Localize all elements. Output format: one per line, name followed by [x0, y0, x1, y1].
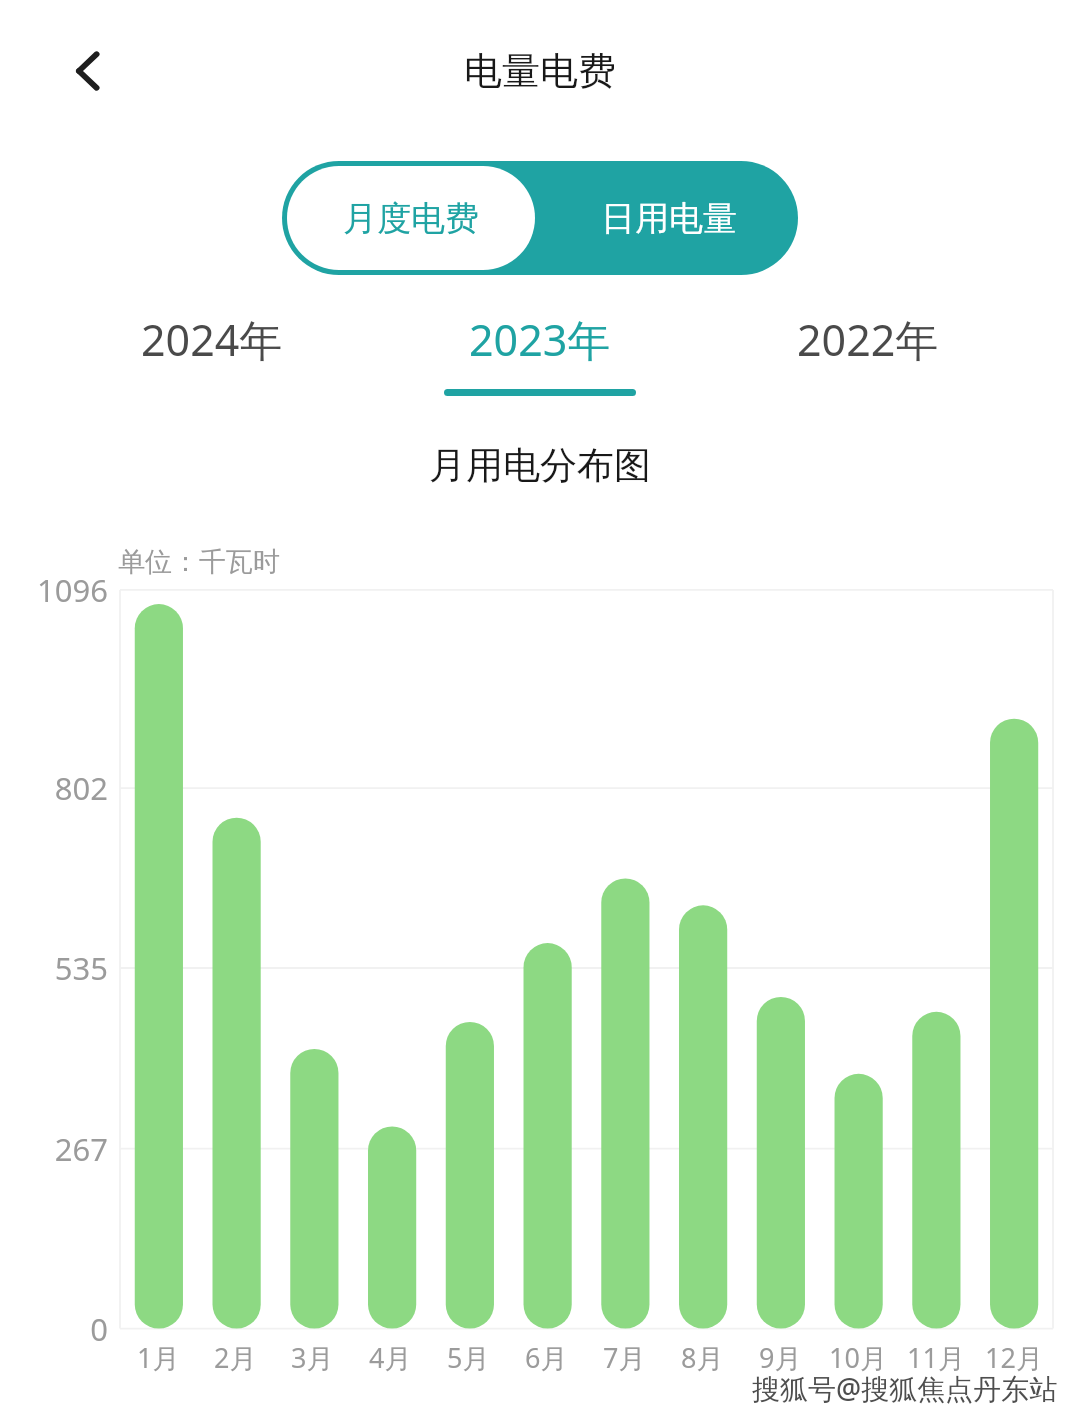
staticText: 电量电费 [464, 47, 616, 95]
staticText: 7月 [603, 1339, 646, 1376]
staticText: 802 [0, 767, 108, 809]
staticText: 12月 [985, 1339, 1043, 1376]
staticText: 4月 [369, 1339, 412, 1376]
staticText: 2月 [214, 1339, 257, 1376]
staticText: 267 [0, 1128, 108, 1170]
staticText: 2024年 [141, 310, 283, 369]
button[interactable]: 2024年 [48, 294, 376, 424]
staticText: 5月 [447, 1339, 490, 1376]
staticText: 0 [0, 1308, 108, 1350]
button[interactable]: Back [44, 27, 132, 115]
staticText: 2023年 [469, 310, 611, 369]
staticText: 3月 [291, 1339, 334, 1376]
staticText: 11月 [907, 1339, 965, 1376]
button[interactable]: 2023年 [376, 294, 704, 424]
staticText: 2022年 [797, 310, 939, 369]
button[interactable]: 日用电量 [540, 161, 798, 275]
staticText: 月度电费 [343, 197, 479, 240]
staticText: 月用电分布图 [0, 442, 1080, 489]
staticText: 1096 [0, 569, 108, 611]
staticText: 1月 [137, 1339, 180, 1376]
button[interactable]: 2022年 [704, 294, 1032, 424]
staticText: 单位：千瓦时 [118, 545, 280, 579]
staticText: 8月 [681, 1339, 724, 1376]
staticText: 535 [0, 947, 108, 989]
button[interactable]: 月度电费 [287, 166, 535, 270]
staticText: 6月 [525, 1339, 568, 1376]
staticText: 9月 [759, 1339, 802, 1376]
staticText: 搜狐号@搜狐焦点丹东站 [752, 1369, 1058, 1407]
staticText: 日用电量 [601, 197, 737, 240]
staticText: 10月 [829, 1339, 887, 1376]
